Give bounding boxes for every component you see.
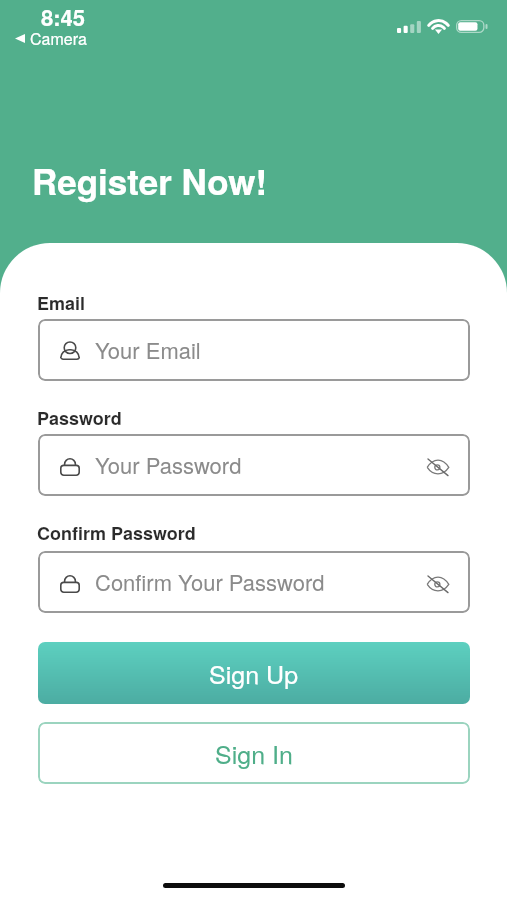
button[interactable]: Your Password <box>38 434 470 496</box>
staticText: Sign In <box>215 735 293 771</box>
staticText: Camera <box>30 27 87 50</box>
staticText: Your Email <box>95 334 201 366</box>
button[interactable]: Show password <box>421 567 455 601</box>
staticText: Confirm Your Password <box>95 566 325 598</box>
staticText: Password <box>37 405 122 431</box>
button[interactable]: Sign Up <box>38 642 470 704</box>
staticText: Your Password <box>95 449 242 481</box>
staticText: Confirm Password <box>37 520 196 546</box>
staticText: Sign Up <box>209 655 299 691</box>
button[interactable]: Your Email <box>38 319 470 381</box>
staticText: Register Now! <box>32 156 268 206</box>
button[interactable]: Show password <box>421 450 455 484</box>
staticText: 8:45 <box>41 1 86 33</box>
button[interactable]: Sign In <box>38 722 470 784</box>
staticText: Email <box>37 290 86 316</box>
button[interactable]: Confirm Your Password <box>38 551 470 613</box>
